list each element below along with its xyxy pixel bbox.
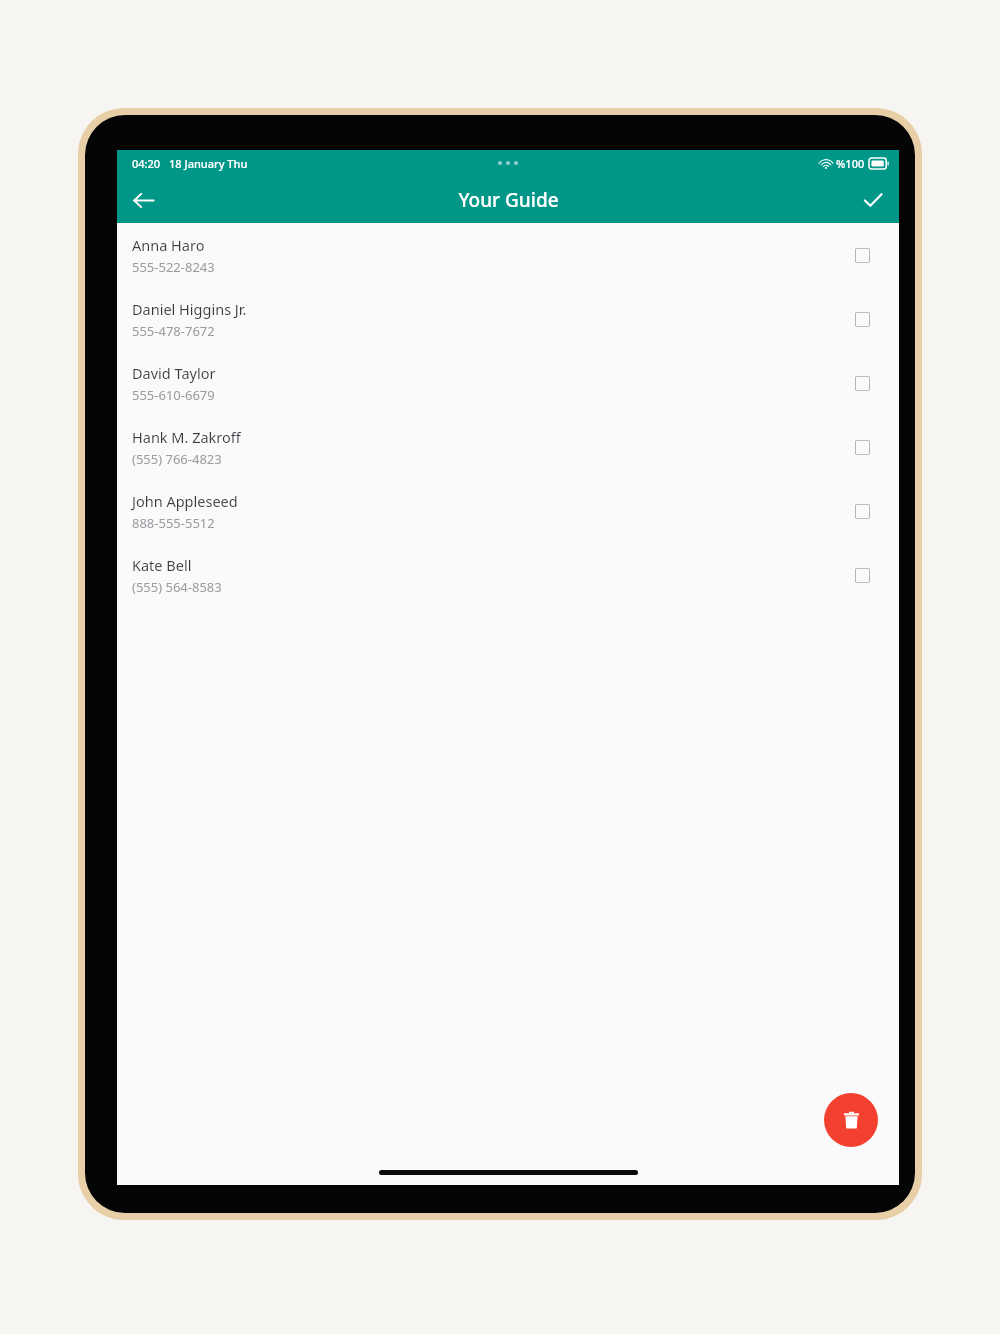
staticText: 555-610-6679 (132, 386, 215, 404)
button[interactable]: Select Daniel Higgins Jr. (847, 304, 877, 334)
staticText: Your Guide (458, 187, 559, 213)
staticText: 555-478-7672 (132, 322, 215, 340)
staticText: Hank M. Zakroff (132, 427, 241, 447)
button[interactable]: Confirm (851, 178, 895, 222)
staticText: 18 January Thu (169, 156, 248, 171)
staticText: John Appleseed (132, 491, 238, 511)
button[interactable]: Kate Bell (117, 543, 899, 607)
staticText: (555) 766-4823 (132, 450, 222, 468)
button[interactable]: Hank M. Zakroff (117, 415, 899, 479)
button[interactable]: David Taylor (117, 351, 899, 415)
staticText: %100 (836, 156, 865, 171)
staticText: Kate Bell (132, 555, 192, 575)
button[interactable]: Daniel Higgins Jr. (117, 287, 899, 351)
button[interactable]: Back (121, 178, 165, 222)
button[interactable]: Select Anna Haro (847, 240, 877, 270)
staticText: 555-522-8243 (132, 258, 215, 276)
button[interactable]: Delete (824, 1093, 878, 1147)
staticText: 04:20 (132, 156, 161, 171)
staticText: (555) 564-8583 (132, 578, 222, 596)
button[interactable]: John Appleseed (117, 479, 899, 543)
staticText: 888-555-5512 (132, 514, 215, 532)
button[interactable]: Select John Appleseed (847, 496, 877, 526)
staticText: Daniel Higgins Jr. (132, 299, 247, 319)
staticText: David Taylor (132, 363, 216, 383)
button[interactable]: Anna Haro (117, 223, 899, 287)
button[interactable]: Select Kate Bell (847, 560, 877, 590)
button[interactable]: Select David Taylor (847, 368, 877, 398)
button[interactable]: Select Hank M. Zakroff (847, 432, 877, 462)
staticText: Anna Haro (132, 235, 205, 255)
